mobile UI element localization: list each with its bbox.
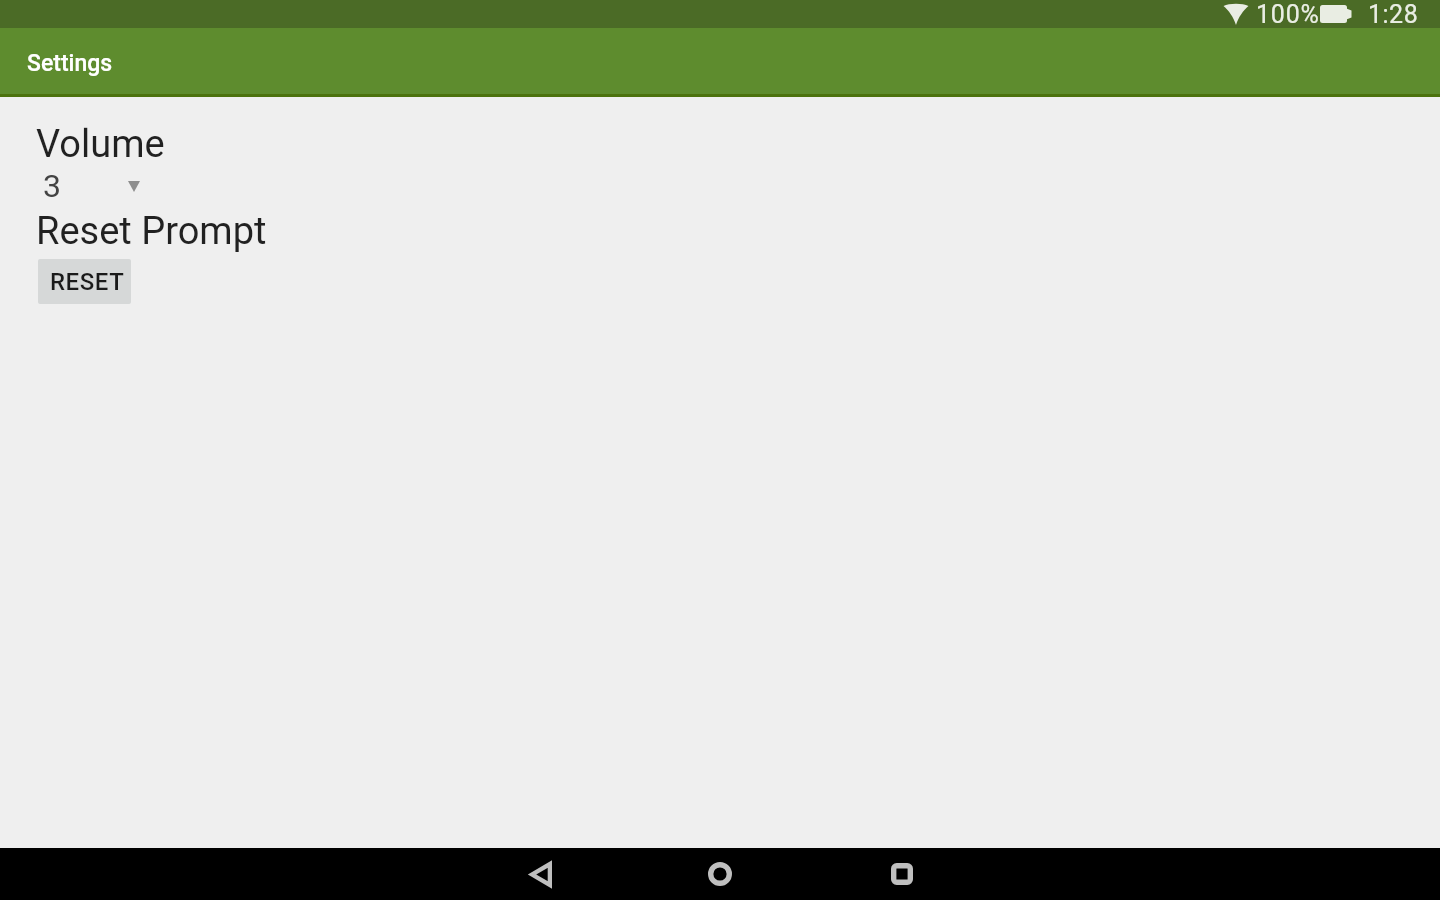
button[interactable]: Back [500, 848, 580, 900]
staticText: RESET [50, 268, 125, 296]
staticText: Volume [36, 122, 165, 167]
button[interactable]: Recents [862, 848, 942, 900]
staticText: 1:28 [1368, 0, 1419, 28]
staticText: 3 [43, 167, 61, 203]
button[interactable]: 3 [36, 167, 148, 203]
button[interactable]: Home [680, 848, 760, 900]
button[interactable]: RESET [38, 259, 131, 304]
staticText: Settings [27, 50, 113, 77]
staticText: 100% [1256, 0, 1320, 28]
staticText: Reset Prompt [36, 209, 267, 254]
